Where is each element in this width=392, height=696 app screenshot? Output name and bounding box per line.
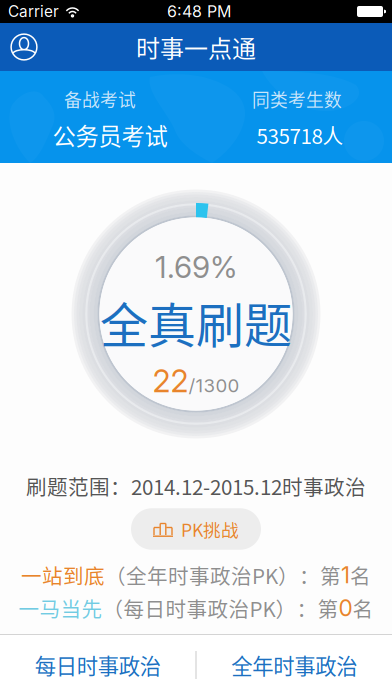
staticText: 刷题范围：2014.12-2015.12时事政治	[26, 471, 366, 501]
staticText: （全年时事政治PK）：第	[105, 560, 341, 590]
staticText: 一站到底	[21, 560, 105, 590]
staticText: Carrier	[8, 2, 59, 21]
staticText: 全真刷题	[100, 287, 292, 357]
button[interactable]: 每日时事政治	[0, 634, 195, 696]
staticText: 备战考试	[64, 86, 136, 112]
staticText: 1	[341, 561, 350, 589]
staticText: 一马当先	[18, 593, 102, 623]
staticText: /1300	[188, 374, 239, 397]
button[interactable]: PK挑战	[131, 508, 261, 550]
staticText: 1.69%	[155, 249, 237, 285]
staticText: 6:48 PM	[167, 2, 231, 21]
staticText: 公务员考试	[52, 118, 167, 152]
staticText: 22	[152, 362, 188, 399]
staticText: 同类考生数	[252, 86, 342, 112]
staticText: 0	[338, 594, 352, 622]
button[interactable]: 全年时事政治	[196, 634, 392, 696]
staticText: （每日时事政治PK）：第	[102, 593, 338, 623]
staticText: 名	[350, 560, 371, 590]
staticText: PK挑战	[181, 516, 239, 542]
staticText: 名	[352, 593, 373, 623]
button[interactable]: Account	[0, 24, 48, 70]
staticText: 每日时事政治	[35, 650, 161, 680]
staticText: 时事一点通	[136, 30, 256, 64]
staticText: 535718人	[256, 120, 343, 150]
staticText: 全年时事政治	[231, 650, 357, 680]
